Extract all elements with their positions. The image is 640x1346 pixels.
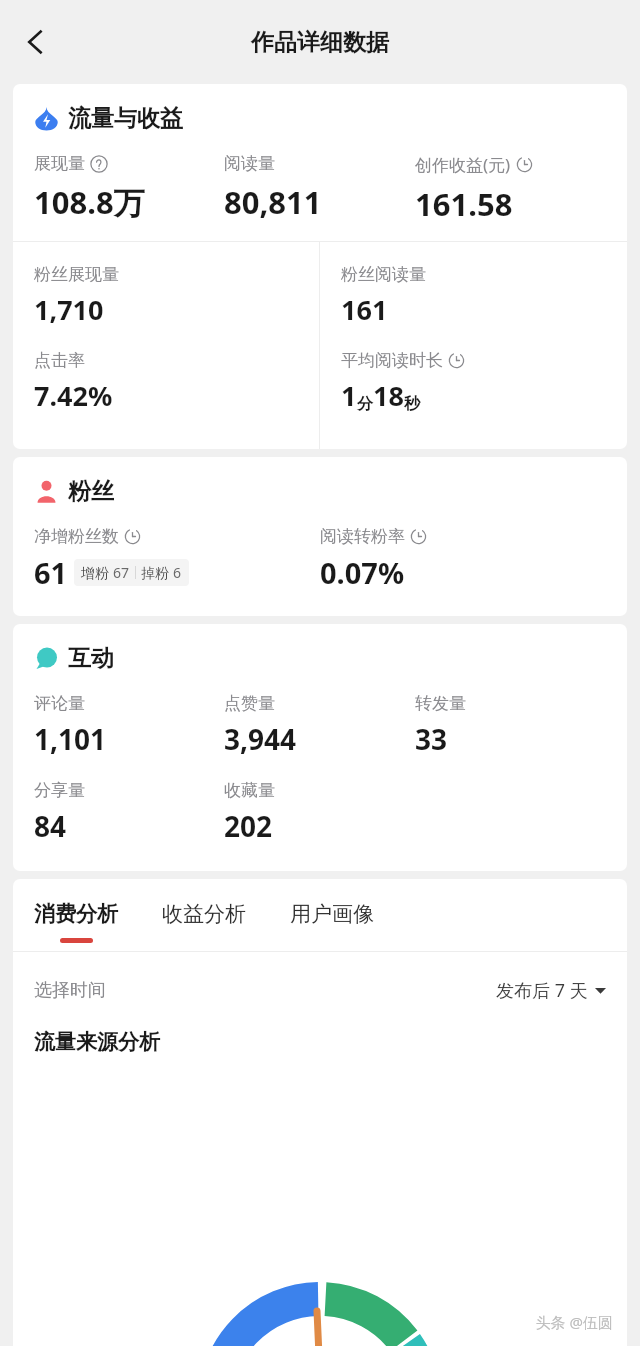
button[interactable]: 收益分析 — [162, 901, 246, 951]
staticText: 创作收益(元) — [415, 153, 511, 176]
staticText: 分享量 — [34, 780, 85, 801]
button[interactable]: 消费分析 — [34, 901, 118, 951]
staticText: 67 — [113, 563, 130, 582]
staticText: 6 — [173, 563, 182, 582]
staticText: 秒 — [404, 394, 420, 414]
staticText: 流量与收益 — [68, 104, 183, 133]
staticText: 互动 — [68, 644, 114, 673]
staticText: 掉粉 — [141, 563, 173, 582]
staticText: 3,944 — [224, 720, 297, 758]
staticText: 108.8万 — [34, 181, 145, 223]
staticText: 消费分析 — [34, 901, 118, 927]
staticText: 粉丝阅读量 — [341, 264, 426, 285]
staticText: 平均阅读时长 — [341, 350, 443, 371]
staticText: 阅读量 — [224, 153, 275, 174]
staticText: 7.42% — [34, 377, 113, 414]
staticText: 粉丝展现量 — [34, 264, 119, 285]
staticText: 头条 @伍圆 — [535, 1312, 613, 1332]
staticText: 1,101 — [34, 720, 107, 758]
staticText: 粉丝 — [68, 477, 114, 506]
staticText: 1 — [341, 377, 357, 414]
staticText: 161 — [341, 291, 388, 328]
staticText: 84 — [34, 807, 67, 845]
staticText: 展现量 — [34, 153, 85, 174]
button[interactable]: Back — [8, 14, 64, 70]
button[interactable]: 用户画像 — [290, 901, 374, 951]
staticText: 0.07% — [320, 553, 405, 592]
staticText: 选择时间 — [34, 979, 106, 1002]
staticText: 分 — [357, 394, 373, 414]
staticText: 作品详细数据 — [251, 28, 389, 57]
staticText: 202 — [224, 807, 273, 845]
staticText: 收藏量 — [224, 780, 275, 801]
staticText: 增粉 — [81, 563, 113, 582]
staticText: 流量来源分析 — [34, 1029, 160, 1055]
staticText: 收益分析 — [162, 901, 246, 927]
staticText: 33 — [415, 720, 448, 758]
staticText: 用户画像 — [290, 901, 374, 927]
staticText: 评论量 — [34, 693, 85, 714]
staticText: 点击率 — [34, 350, 85, 371]
button[interactable]: 选择时间 — [34, 978, 606, 1003]
staticText: 18 — [373, 377, 404, 414]
staticText: 80,811 — [224, 181, 322, 223]
staticText: 点赞量 — [224, 693, 275, 714]
staticText: 发布后 7 天 — [496, 978, 588, 1003]
staticText: 1,710 — [34, 291, 104, 328]
staticText: 转发量 — [415, 693, 466, 714]
staticText: 61 — [34, 553, 68, 592]
staticText: 阅读转粉率 — [320, 526, 405, 547]
staticText: 净增粉丝数 — [34, 526, 119, 547]
staticText: 161.58 — [415, 183, 513, 225]
